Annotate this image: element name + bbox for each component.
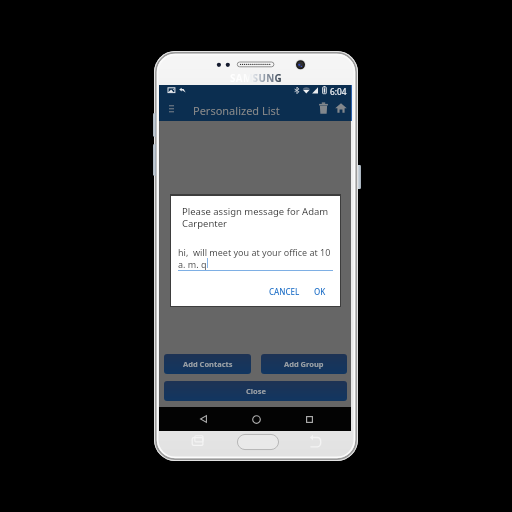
staticText: 6:04 [330, 86, 347, 96]
button[interactable]: Home [234, 407, 278, 431]
staticText: CANCEL [269, 286, 300, 297]
staticText: Please assign message for Adam Carpenter [182, 205, 334, 230]
button[interactable]: Back [181, 407, 225, 431]
button[interactable]: Volume down [153, 144, 156, 176]
button[interactable]: Volume up [153, 113, 156, 137]
staticText: Personalized List [193, 103, 280, 118]
button[interactable]: Add Contacts [164, 354, 251, 374]
staticText: SAMSUNG [230, 72, 283, 84]
staticText: OK [314, 286, 326, 297]
staticText: Close [246, 386, 266, 396]
staticText: hi, will meet you at your office at 10 a… [178, 246, 333, 271]
staticText: Add Group [284, 359, 324, 369]
button[interactable]: Home [330, 95, 352, 121]
button[interactable]: Delete [312, 95, 334, 121]
button[interactable]: Power [358, 165, 361, 189]
button[interactable]: OK [311, 284, 329, 298]
button[interactable]: CANCEL [267, 284, 301, 298]
staticText: Add Contacts [183, 359, 233, 369]
button[interactable]: Home button [237, 434, 279, 450]
button[interactable]: Open navigation drawer [160, 95, 182, 121]
button[interactable]: Close [164, 381, 347, 401]
button[interactable]: Add Group [261, 354, 347, 374]
button[interactable]: Recent apps [287, 407, 331, 431]
